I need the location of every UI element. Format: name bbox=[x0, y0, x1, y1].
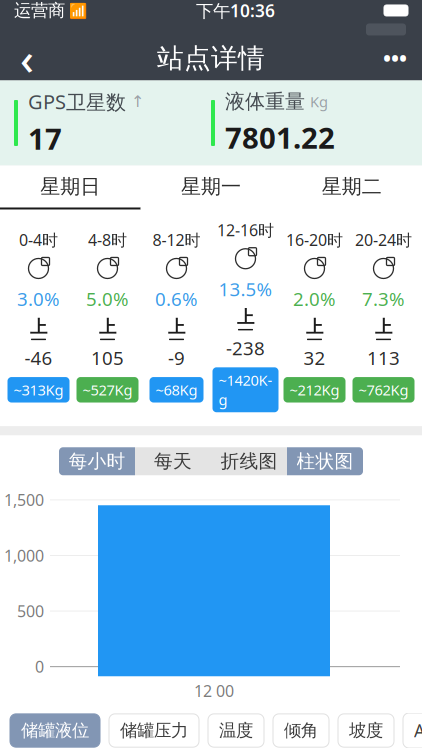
staticText: 折线图 bbox=[220, 450, 277, 473]
button[interactable]: 折线图 bbox=[211, 447, 287, 475]
button[interactable]: 柱状图 bbox=[287, 447, 363, 475]
button[interactable]: 星期日 bbox=[0, 165, 141, 209]
staticText: 17 bbox=[28, 119, 62, 158]
staticText: -238 bbox=[226, 335, 265, 360]
staticText: 液体重量 bbox=[225, 89, 305, 114]
staticText: 储罐液位 bbox=[21, 720, 89, 741]
staticText: 32 bbox=[303, 345, 325, 370]
button[interactable]: ACCx bbox=[403, 713, 422, 748]
button[interactable]: 每天 bbox=[135, 447, 211, 475]
staticText: 12 00 bbox=[194, 680, 234, 701]
button[interactable]: 星期一 bbox=[141, 165, 281, 209]
staticText: Kg bbox=[310, 92, 328, 111]
button[interactable]: Back bbox=[0, 36, 54, 80]
staticText: 温度 bbox=[219, 720, 253, 741]
staticText: ↑ bbox=[131, 92, 144, 111]
staticText: ••• bbox=[383, 44, 407, 73]
staticText: 105 bbox=[91, 345, 124, 370]
staticText: 上 bbox=[375, 316, 392, 338]
staticText: 运营商 bbox=[14, 0, 65, 21]
staticText: ‹ bbox=[20, 30, 34, 87]
staticText: ACCx bbox=[414, 719, 422, 742]
staticText: 每天 bbox=[154, 450, 192, 473]
staticText: ~762Kg bbox=[358, 380, 408, 400]
staticText: 坡度 bbox=[349, 720, 383, 741]
button[interactable]: 倾角 bbox=[273, 714, 329, 747]
button[interactable]: 坡度 bbox=[338, 714, 394, 747]
staticText: 上 bbox=[30, 316, 47, 338]
staticText: ~527Kg bbox=[82, 380, 132, 400]
staticText: 下午10:36 bbox=[196, 0, 275, 22]
staticText: 星期一 bbox=[181, 174, 241, 199]
staticText: 16-20时 bbox=[286, 229, 343, 250]
staticText: 20-24时 bbox=[355, 229, 412, 250]
staticText: 倾角 bbox=[284, 720, 318, 741]
staticText: 上 bbox=[99, 316, 116, 338]
staticText: 📶 bbox=[65, 1, 87, 20]
button[interactable]: 每小时 bbox=[59, 447, 135, 475]
staticText: 1,000 bbox=[4, 545, 44, 566]
staticText: ~1420Kg bbox=[218, 370, 272, 409]
staticText: 上 bbox=[237, 307, 254, 328]
staticText: 星期日 bbox=[40, 174, 100, 199]
staticText: 12-16时 bbox=[217, 219, 274, 241]
staticText: ~68Kg bbox=[155, 380, 197, 400]
button[interactable]: 储罐液位 bbox=[10, 714, 100, 747]
staticText: 0-4时 bbox=[19, 229, 58, 250]
staticText: 1,500 bbox=[4, 489, 44, 510]
staticText: -46 bbox=[24, 345, 52, 370]
button[interactable]: 温度 bbox=[208, 714, 264, 747]
staticText: ~212Kg bbox=[289, 380, 339, 400]
button[interactable]: 储罐压力 bbox=[109, 714, 199, 747]
staticText: 5.0% bbox=[86, 286, 129, 311]
staticText: 500 bbox=[17, 600, 44, 622]
staticText: ~313Kg bbox=[13, 380, 63, 400]
staticText: 8-12时 bbox=[152, 229, 200, 250]
staticText: 储罐压力 bbox=[120, 720, 188, 741]
staticText: 13.5% bbox=[218, 277, 272, 301]
staticText: 上 bbox=[168, 316, 185, 338]
staticText: -9 bbox=[168, 345, 185, 370]
staticText: 2.0% bbox=[293, 286, 336, 311]
staticText: 星期二 bbox=[322, 174, 382, 199]
staticText: GPS卫星数 bbox=[28, 88, 126, 115]
staticText: 上 bbox=[306, 316, 323, 338]
staticText: 0 bbox=[35, 656, 44, 677]
button[interactable]: 星期二 bbox=[281, 165, 422, 209]
staticText: 柱状图 bbox=[296, 450, 353, 473]
staticText: 4-8时 bbox=[88, 229, 127, 250]
staticText: 每小时 bbox=[68, 450, 125, 473]
staticText: 7.3% bbox=[362, 286, 405, 311]
button[interactable]: More options bbox=[368, 36, 422, 80]
staticText: 站点详情 bbox=[157, 42, 265, 75]
staticText: 3.0% bbox=[17, 286, 60, 311]
staticText: 113 bbox=[367, 345, 400, 370]
staticText: 0.6% bbox=[155, 286, 198, 311]
staticText: 7801.22 bbox=[225, 118, 335, 157]
